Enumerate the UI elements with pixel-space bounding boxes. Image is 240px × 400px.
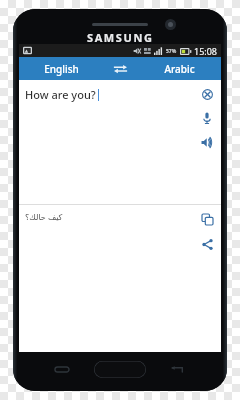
button[interactable]: Share [198,235,216,253]
staticText: كيف حالك؟ [25,211,63,222]
button[interactable]: English [19,57,103,80]
button[interactable]: Swap languages [103,57,137,80]
staticText: English [44,62,79,76]
staticText: SAMSUNG [87,30,154,45]
button[interactable]: Clear text [198,85,216,103]
staticText: 15:08 [194,45,218,57]
button[interactable]: Arabic [137,57,221,80]
staticText: 57% [166,48,177,55]
button[interactable]: Listen [198,133,216,151]
staticText: Arabic [164,62,195,76]
button[interactable]: Copy translation [198,210,216,228]
staticText: How are you? [25,87,96,102]
button[interactable]: Voice input [198,109,216,127]
